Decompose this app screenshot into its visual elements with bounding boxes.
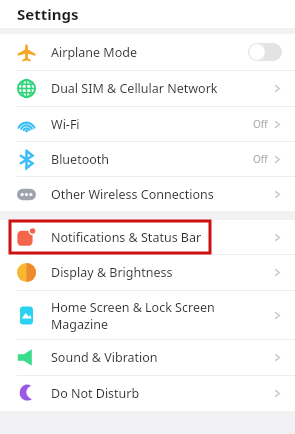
button[interactable]: Sound & Vibration — [0, 340, 295, 376]
button[interactable]: Airplane Mode — [0, 34, 295, 71]
staticText: Wi-Fi — [51, 116, 80, 133]
button[interactable]: Home Screen & Lock Screen Magazine — [0, 291, 295, 340]
button[interactable]: Notifications & Status Bar — [0, 220, 295, 255]
button[interactable]: Airplane mode toggle — [248, 43, 282, 61]
staticText: Off — [253, 117, 268, 131]
button[interactable]: Display & Brightness — [0, 255, 295, 291]
staticText: Display & Brightness — [51, 264, 173, 281]
staticText: Dual SIM & Cellular Network — [51, 80, 218, 97]
staticText: Home Screen & Lock Screen Magazine — [51, 299, 215, 332]
staticText: Off — [253, 152, 268, 166]
staticText: Other Wireless Connections — [51, 186, 214, 203]
staticText: Settings — [17, 4, 79, 24]
button[interactable]: Other Wireless Connections — [0, 177, 295, 211]
button[interactable]: Do Not Disturb — [0, 376, 295, 411]
staticText: Do Not Disturb — [51, 385, 140, 402]
button[interactable]: Bluetooth — [0, 142, 295, 177]
button[interactable]: Wi-Fi — [0, 107, 295, 142]
staticText: Airplane Mode — [51, 44, 137, 61]
staticText: Bluetooth — [51, 151, 110, 168]
button[interactable]: Dual SIM & Cellular Network — [0, 71, 295, 107]
staticText: Sound & Vibration — [51, 349, 158, 366]
staticText: Notifications & Status Bar — [51, 229, 202, 246]
